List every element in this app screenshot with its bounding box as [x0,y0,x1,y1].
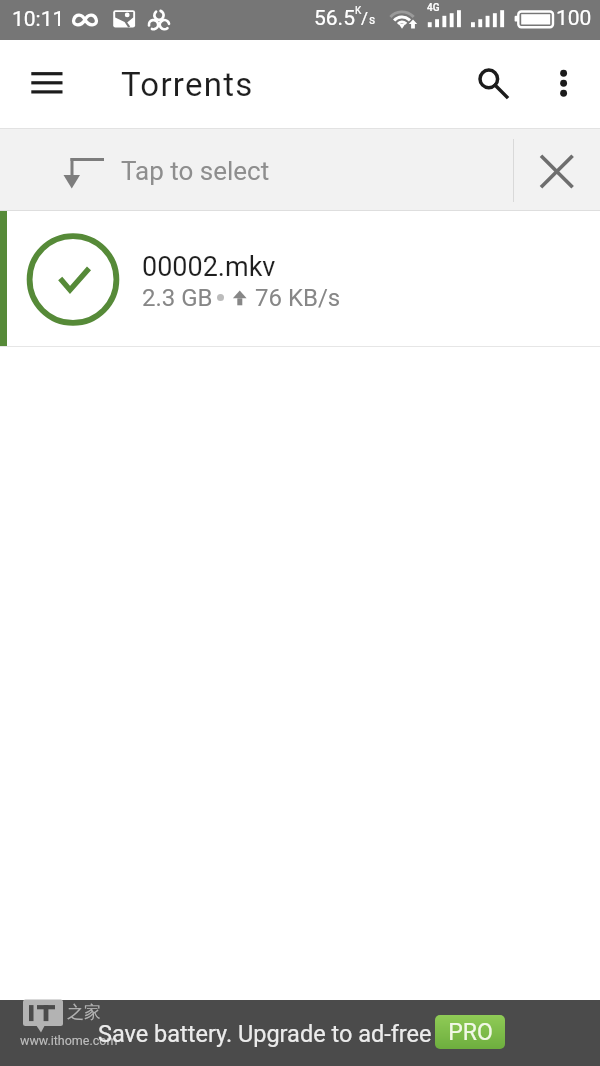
button[interactable]: Open navigation drawer [0,40,94,129]
staticText: PRO [448,1019,493,1046]
staticText: 76 KB/s [255,284,341,312]
staticText: 之家 [67,1002,101,1023]
staticText: / [361,8,369,28]
button[interactable]: PRO [435,1015,505,1049]
staticText: 56.5 [314,6,355,31]
staticText: s [369,13,376,27]
staticText: 4G [427,2,440,14]
staticText: K [355,5,362,17]
button[interactable]: 之家 [0,1000,600,1066]
staticText: Save battery. Upgrade to ad-free [98,1020,432,1048]
staticText: 100 [556,6,592,31]
button[interactable]: Tap to select [0,129,513,211]
staticText: 00002.mkv [142,251,276,283]
button[interactable]: 00002.mkv [0,211,600,347]
staticText: 2.3 GB [142,284,213,312]
staticText: Tap to select [121,156,270,186]
button[interactable]: More options [529,40,597,129]
staticText: www.ithome.com [20,1033,118,1048]
staticText: 10:11 [12,7,65,32]
button[interactable]: Search [455,40,525,129]
button[interactable]: Close selection mode [514,129,600,211]
staticText: Torrents [121,65,254,104]
